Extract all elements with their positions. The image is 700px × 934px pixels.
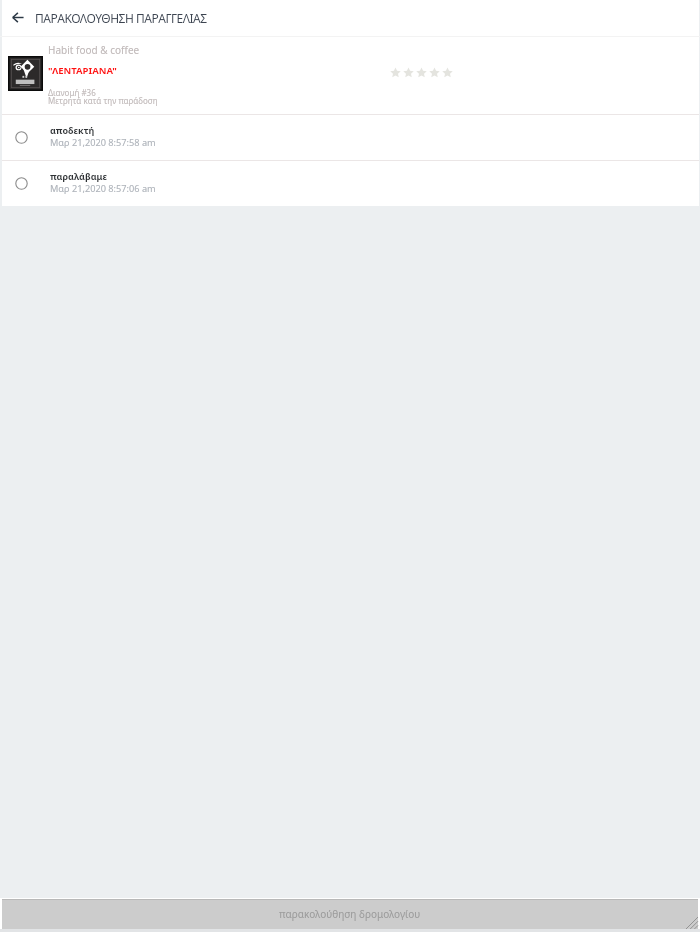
staticText: αποδεκτή bbox=[50, 124, 95, 136]
button[interactable]: παραλάβαμε bbox=[2, 161, 699, 206]
staticText: Μαρ 21,2020 8:57:06 am bbox=[50, 182, 156, 195]
button[interactable]: Back bbox=[6, 5, 30, 29]
staticText: "ΛΕΝΤΑΡΙΑΝΑ" bbox=[48, 64, 117, 77]
staticText: Μαρ 21,2020 8:57:58 am bbox=[50, 136, 156, 149]
button[interactable]: παρακολούθηση δρομολογίου bbox=[2, 899, 698, 929]
staticText: Διανομή #36 bbox=[48, 87, 96, 98]
staticText: Μετρητά κατά την παράδοση bbox=[48, 95, 158, 106]
staticText: παρακολούθηση δρομολογίου bbox=[279, 907, 421, 921]
button[interactable]: αποδεκτή bbox=[2, 115, 699, 160]
staticText: ΠΑΡΑΚΟΛΟΥΘΗΣΗ ΠΑΡΑΓΓΕΛΙΑΣ bbox=[35, 10, 207, 26]
staticText: Habit food & coffee bbox=[48, 43, 140, 57]
staticText: παραλάβαμε bbox=[50, 170, 107, 182]
